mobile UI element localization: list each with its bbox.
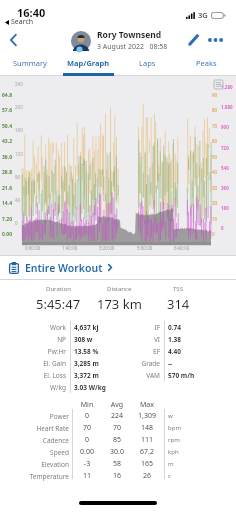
staticText: 570 m/h	[168, 371, 195, 380]
button[interactable]: Laps	[118, 54, 177, 72]
staticText: Max	[127, 400, 167, 409]
staticText: 16	[97, 471, 137, 481]
staticText: 0	[67, 411, 107, 421]
staticText: Duration	[46, 285, 71, 293]
staticText: 30	[212, 185, 218, 191]
staticText: 43.2	[2, 138, 12, 145]
staticText: 36.0	[2, 154, 12, 161]
staticText: rpm	[168, 436, 180, 444]
staticText: 900	[221, 124, 229, 130]
button[interactable]: More options	[205, 29, 225, 51]
staticText: Entire Workout	[25, 261, 103, 275]
staticText: Peaks	[196, 58, 217, 68]
staticText: 10	[212, 216, 218, 222]
staticText: 180	[221, 205, 229, 211]
staticText: 50.4	[2, 123, 12, 130]
staticText: 16:40	[17, 5, 46, 20]
staticText: Rory Townsend	[97, 29, 162, 41]
button[interactable]: Summary	[0, 54, 59, 72]
staticText: --	[168, 359, 173, 368]
staticText: 40	[212, 169, 218, 175]
staticText: Power	[0, 412, 69, 421]
staticText: 173 km	[97, 295, 142, 313]
staticText: 3,372 m	[74, 371, 99, 380]
staticText: 4.40	[168, 347, 181, 356]
staticText: W/kg	[0, 383, 66, 392]
button[interactable]: Map/Graph	[59, 54, 118, 72]
staticText: 1,260	[221, 84, 233, 90]
staticText: 26	[127, 471, 167, 481]
staticText: 0	[212, 231, 215, 237]
staticText: 50	[212, 154, 218, 160]
button[interactable]: Back	[2, 29, 24, 51]
staticText: 0	[67, 435, 107, 445]
staticText: Cadence	[0, 436, 69, 445]
staticText: El. Gain	[0, 359, 66, 368]
staticText: 13.58 %	[74, 347, 99, 356]
staticText: 0:00:00	[25, 245, 41, 251]
staticText: 4,637 kJ	[74, 323, 99, 332]
staticText: 7.20	[2, 216, 12, 223]
staticText: 0.74	[168, 323, 181, 332]
staticText: 720	[221, 145, 229, 151]
staticText: 6:40:00	[174, 245, 190, 251]
button[interactable]: Chart legend	[212, 78, 224, 90]
staticText: 148	[127, 423, 167, 433]
staticText: 60	[212, 138, 218, 144]
staticText: 70	[67, 423, 107, 433]
staticText: VAM	[94, 371, 160, 380]
staticText: kph	[168, 448, 179, 456]
staticText: 5:00:00	[137, 245, 153, 251]
staticText: 3,285 m	[74, 359, 99, 368]
button[interactable]: Peaks	[177, 54, 236, 72]
staticText: 120	[15, 151, 23, 157]
staticText: 90	[212, 92, 218, 98]
staticText: 20	[212, 200, 218, 206]
staticText: 80	[15, 174, 21, 180]
staticText: 0.00	[67, 447, 107, 457]
staticText: VI	[94, 335, 160, 344]
staticText: 58	[97, 459, 137, 469]
staticText: 14.4	[2, 200, 12, 207]
staticText: Elevation	[0, 460, 69, 469]
staticText: 3G	[198, 10, 208, 20]
staticText: 70	[212, 123, 218, 129]
staticText: Map/Graph	[67, 58, 110, 68]
staticText: 3:20:00	[99, 245, 115, 251]
staticText: bpm	[168, 424, 181, 432]
staticText: 308 w	[74, 335, 93, 344]
staticText: Distance	[107, 285, 132, 293]
staticText: Heart Rate	[0, 424, 69, 433]
staticText: 165	[127, 459, 167, 469]
staticText: 30.0	[97, 447, 137, 457]
staticText: 240	[15, 81, 23, 87]
staticText: Laps	[139, 58, 156, 68]
staticText: IF	[94, 323, 160, 332]
staticText: Pw:Hr	[0, 347, 66, 356]
staticText: 67.2	[127, 447, 167, 457]
staticText: Summary	[13, 58, 47, 68]
staticText: Search	[11, 17, 34, 27]
staticText: El. Loss	[0, 371, 66, 380]
staticText: 57.6	[2, 107, 12, 114]
staticText: 1.38	[168, 335, 181, 344]
staticText: 5:45:47	[36, 295, 81, 313]
staticText: 0	[221, 225, 224, 231]
staticText: 111	[127, 435, 167, 445]
staticText: 80	[212, 107, 218, 113]
staticText: EF	[94, 347, 160, 356]
staticText: 360	[221, 185, 229, 191]
button[interactable]: Entire Workout	[0, 256, 236, 279]
staticText: 21.6	[2, 185, 12, 192]
staticText: 1,309	[127, 411, 167, 421]
staticText: Speed	[0, 448, 69, 457]
staticText: -3	[67, 459, 107, 469]
staticText: Temperature	[0, 472, 69, 481]
staticText: Grade	[94, 359, 160, 368]
staticText: 0.00	[2, 231, 12, 238]
staticText: 70	[97, 423, 137, 433]
staticText: NP	[0, 335, 66, 344]
staticText: 3.03 W/kg	[74, 383, 106, 392]
staticText: 540	[221, 165, 229, 171]
button[interactable]: Edit	[185, 29, 202, 51]
